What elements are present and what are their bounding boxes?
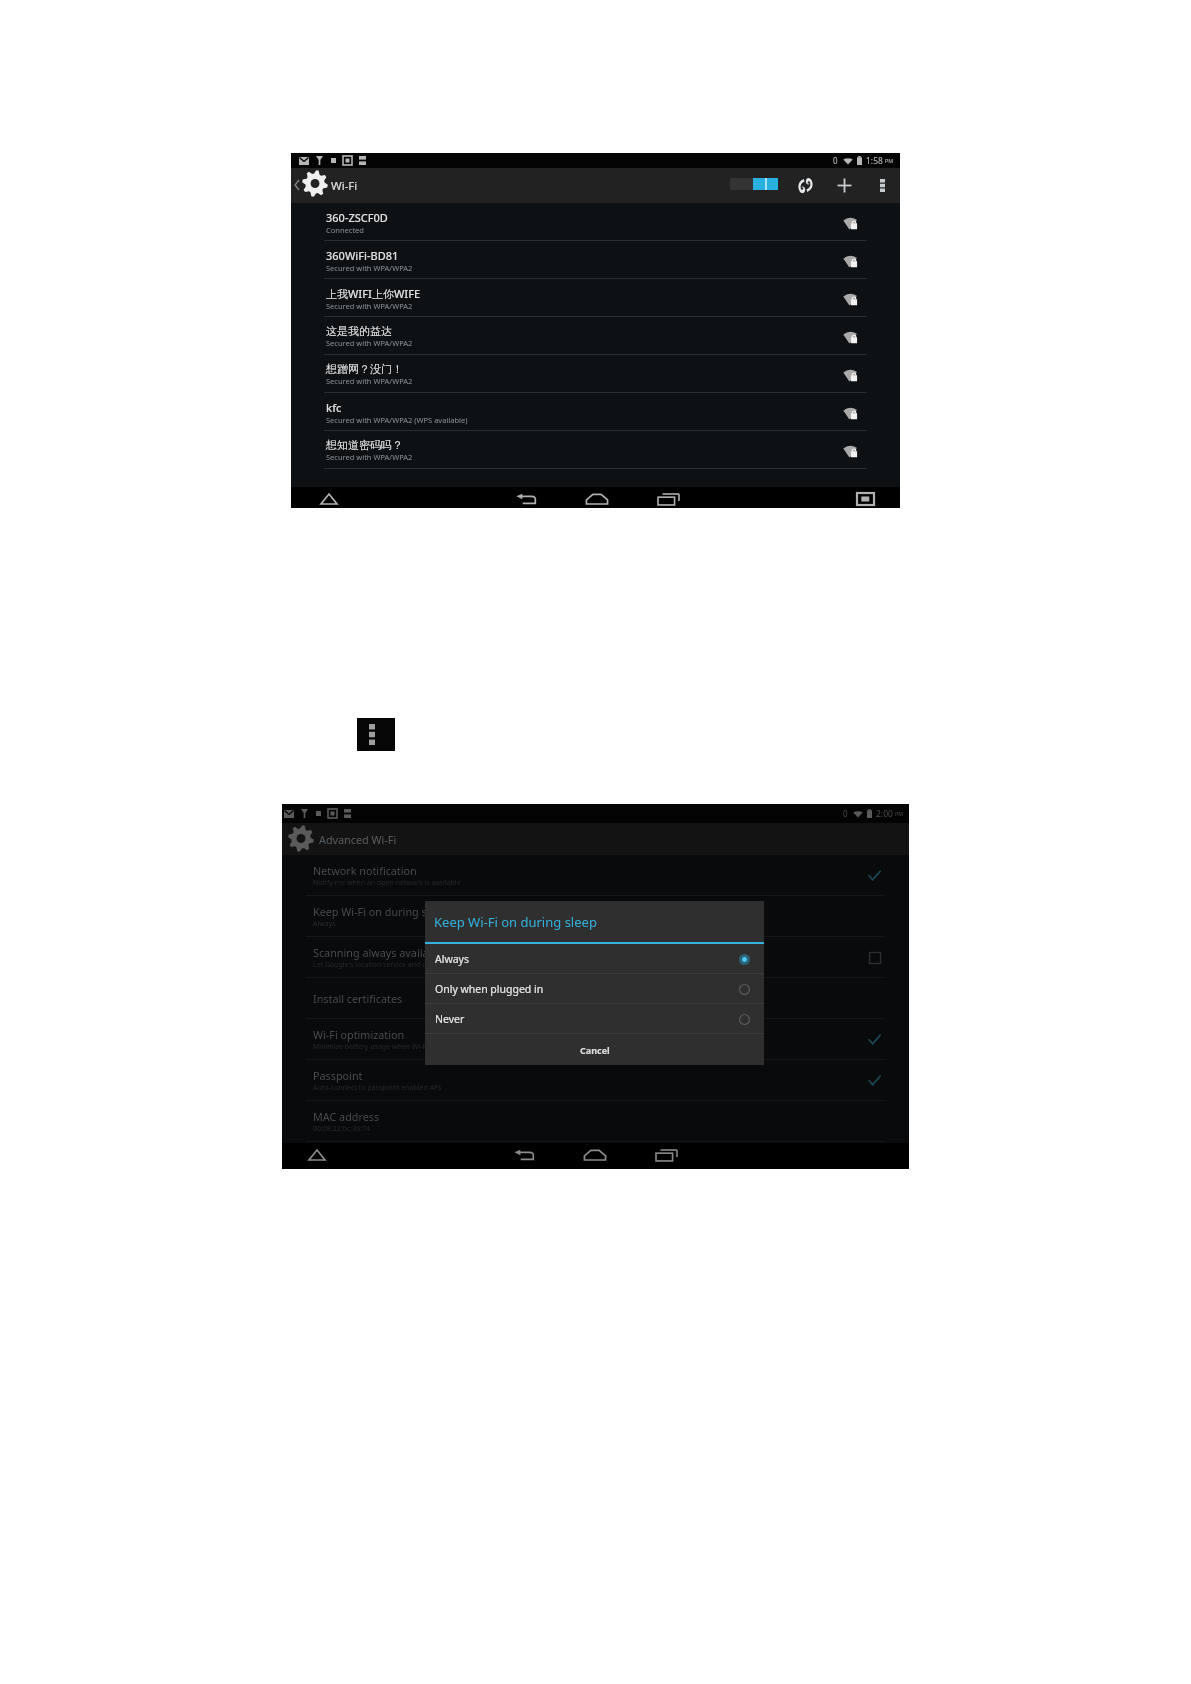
button[interactable]: 这是我的益达 — [291, 317, 900, 355]
staticText: Keep Wi-Fi on during sleep — [434, 913, 597, 931]
staticText: Let Google's location service and other … — [313, 960, 475, 970]
staticText: 0 — [833, 155, 838, 166]
staticText: Only when plugged in — [435, 982, 544, 996]
staticText: Secured with WPA/WPA2 — [326, 376, 413, 386]
staticText: Never — [435, 1012, 465, 1026]
button[interactable]: More options — [868, 168, 897, 203]
button[interactable]: 360-ZSCF0D — [291, 203, 900, 241]
staticText: MAC address — [313, 1109, 380, 1124]
button[interactable]: Home — [585, 490, 609, 508]
staticText: Secured with WPA/WPA2 — [326, 338, 413, 348]
staticText: 这是我的益达 — [326, 324, 392, 338]
button[interactable]: 上我WIFI上你WIFE — [291, 279, 900, 317]
button[interactable]: 想知道密码吗？ — [291, 431, 900, 469]
button[interactable]: Network notification — [282, 855, 909, 896]
button[interactable]: MAC address — [282, 1101, 909, 1142]
button[interactable]: Add network — [830, 168, 859, 203]
staticText: 上我WIFI上你WIFE — [326, 286, 421, 301]
button[interactable]: Wi-Fi on — [725, 168, 783, 203]
staticText: Notify me when an open network is availa… — [313, 878, 461, 888]
button[interactable]: Install certificates — [282, 978, 909, 1019]
staticText: Auto-connect to passpoint enabled APs — [313, 1083, 442, 1093]
staticText: Wi-Fi — [331, 178, 358, 194]
staticText: Secured with WPA/WPA2 (WPS available) — [326, 415, 468, 425]
staticText: Secured with WPA/WPA2 — [326, 263, 413, 273]
button[interactable]: Always — [425, 944, 764, 974]
button[interactable]: Back — [512, 1146, 536, 1164]
button[interactable]: Never — [425, 1004, 764, 1034]
staticText: PM — [895, 810, 904, 817]
button[interactable]: More options — [357, 718, 395, 751]
staticText: PM — [885, 157, 894, 164]
staticText: Connected — [326, 225, 364, 235]
button[interactable]: Back — [514, 490, 538, 508]
button[interactable]: Screenshot — [853, 490, 877, 508]
staticText: Keep Wi-Fi on during sleep — [313, 904, 449, 919]
button[interactable]: Up — [305, 1146, 329, 1164]
staticText: Advanced Wi-Fi — [319, 832, 397, 847]
staticText: Minimize battery usage when Wi-Fi is on — [313, 1042, 446, 1052]
staticText: 360-ZSCF0D — [326, 210, 388, 225]
staticText: Scanning always available — [313, 945, 445, 960]
staticText: Secured with WPA/WPA2 — [326, 301, 413, 311]
button[interactable]: kfc — [291, 393, 900, 431]
staticText: Always — [313, 919, 336, 929]
button[interactable]: Scanning always available — [282, 937, 909, 978]
staticText: Wi-Fi optimization — [313, 1027, 405, 1042]
button[interactable]: 想蹭网？没门！ — [291, 355, 900, 393]
staticText: 1:58 — [866, 155, 883, 167]
staticText: 想知道密码吗？ — [326, 438, 403, 452]
button[interactable]: Passpoint — [282, 1060, 909, 1101]
staticText: 360WiFi-BD81 — [326, 248, 399, 263]
button[interactable]: Recent apps — [654, 1146, 678, 1164]
button[interactable]: Wi-Fi optimization — [282, 1019, 909, 1060]
button[interactable]: Only when plugged in — [425, 974, 764, 1004]
button[interactable]: Recent apps — [656, 490, 680, 508]
staticText: Network notification — [313, 863, 417, 878]
staticText: kfc — [326, 400, 342, 415]
staticText: Install certificates — [313, 991, 403, 1006]
staticText: Secured with WPA/WPA2 — [326, 452, 413, 462]
button[interactable]: Cancel — [425, 1034, 764, 1065]
staticText: 想蹭网？没门！ — [326, 362, 403, 376]
staticText: Passpoint — [313, 1068, 363, 1083]
button[interactable]: Keep Wi-Fi on during sleep — [282, 896, 909, 937]
staticText: 2:00 — [876, 808, 893, 820]
staticText: 0 — [843, 808, 848, 819]
button[interactable]: WPS — [791, 168, 820, 203]
button[interactable]: 360WiFi-BD81 — [291, 241, 900, 279]
staticText: 00:08:22:bc:36:74 — [313, 1124, 371, 1134]
button[interactable]: Up — [317, 490, 341, 508]
button[interactable]: Back to settings — [291, 168, 335, 203]
staticText: Cancel — [580, 1044, 610, 1056]
button[interactable]: Home — [583, 1146, 607, 1164]
staticText: Always — [435, 952, 469, 966]
